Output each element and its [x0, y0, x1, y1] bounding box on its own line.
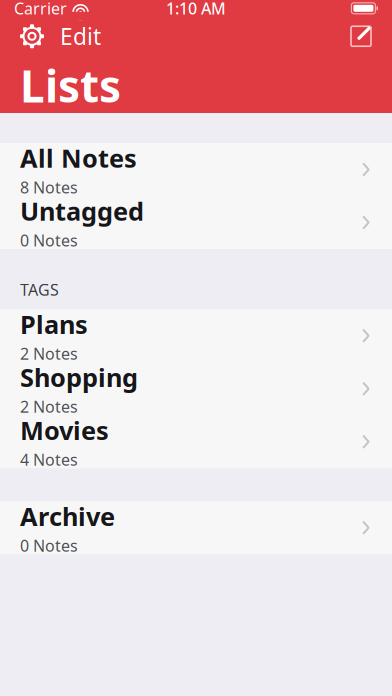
staticText: Lists [20, 56, 121, 115]
staticText: Carrier [14, 0, 67, 19]
staticText: 1:10 AM [166, 0, 226, 19]
staticText: Untagged [20, 194, 144, 228]
staticText: 0 Notes [20, 230, 78, 251]
staticText: All Notes [20, 141, 137, 175]
staticText: 2 Notes [20, 343, 78, 364]
button[interactable]: Compose [344, 21, 378, 51]
button[interactable]: Edit [50, 17, 111, 55]
button[interactable]: All Notes [0, 143, 392, 196]
staticText: TAGS [20, 279, 59, 300]
staticText: Shopping [20, 360, 138, 394]
staticText: 2 Notes [20, 396, 78, 417]
staticText: Edit [60, 21, 101, 51]
staticText: 4 Notes [20, 449, 78, 470]
staticText: Movies [20, 413, 109, 447]
button[interactable]: Shopping [0, 362, 392, 415]
staticText: 8 Notes [20, 177, 78, 198]
button[interactable]: Plans [0, 309, 392, 362]
button[interactable]: Untagged [0, 196, 392, 249]
staticText: 0 Notes [20, 535, 78, 556]
button[interactable]: Movies [0, 415, 392, 468]
staticText: Plans [20, 307, 88, 341]
button[interactable]: Archive [0, 501, 392, 554]
button[interactable]: Settings [14, 20, 50, 52]
staticText: Archive [20, 499, 115, 533]
